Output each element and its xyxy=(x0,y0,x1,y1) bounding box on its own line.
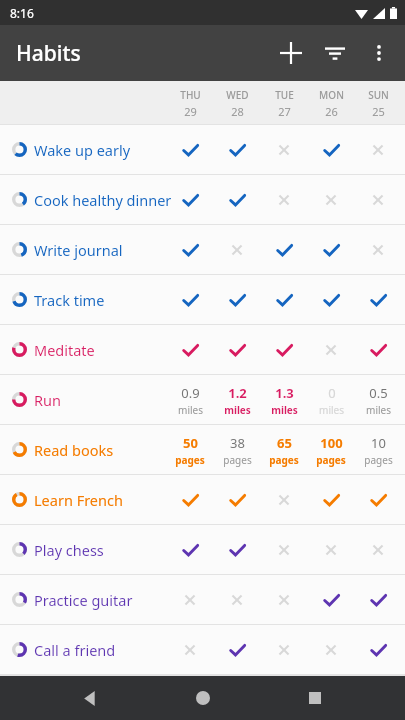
button[interactable]: Completed xyxy=(264,330,304,370)
button[interactable]: Completed xyxy=(170,480,210,520)
button[interactable]: Completed xyxy=(358,580,398,620)
button[interactable]: Completed xyxy=(311,580,351,620)
button[interactable]: Completed xyxy=(217,280,257,320)
staticText: miles xyxy=(319,403,344,417)
button[interactable]: Wake up early xyxy=(0,125,405,174)
button[interactable]: Not completed xyxy=(217,230,257,270)
button[interactable]: Completed xyxy=(358,480,398,520)
button[interactable]: Recent apps xyxy=(293,676,337,720)
staticText: Track time xyxy=(34,290,105,310)
staticText: 0.5 xyxy=(369,384,388,402)
button[interactable]: Completed xyxy=(170,280,210,320)
staticText: WED xyxy=(226,88,249,102)
button[interactable]: 0 xyxy=(309,378,353,422)
button[interactable]: Completed xyxy=(264,280,304,320)
button[interactable]: Completed xyxy=(311,280,351,320)
staticText: 50 xyxy=(183,434,198,452)
button[interactable]: Completed xyxy=(170,530,210,570)
button[interactable]: Not completed xyxy=(358,230,398,270)
staticText: 10 xyxy=(371,434,386,452)
staticText: pages xyxy=(175,453,205,467)
staticText: Read books xyxy=(34,440,114,460)
staticText: MON xyxy=(319,88,344,102)
button[interactable]: Completed xyxy=(358,280,398,320)
button[interactable]: Not completed xyxy=(264,630,304,670)
button[interactable]: Back xyxy=(68,676,112,720)
button[interactable]: 65 xyxy=(262,428,306,472)
staticText: Play chess xyxy=(34,540,104,560)
button[interactable]: Practice guitar xyxy=(0,575,405,624)
button[interactable]: 1.2 xyxy=(215,378,259,422)
staticText: miles xyxy=(178,403,203,417)
button[interactable]: Add habit xyxy=(269,31,313,75)
button[interactable]: 100 xyxy=(309,428,353,472)
button[interactable]: Completed xyxy=(217,480,257,520)
button[interactable]: Completed xyxy=(170,180,210,220)
staticText: TUE xyxy=(275,88,294,102)
button[interactable]: Write journal xyxy=(0,225,405,274)
button[interactable]: Run xyxy=(0,375,405,424)
button[interactable]: More options xyxy=(357,31,401,75)
button[interactable]: Completed xyxy=(311,130,351,170)
staticText: 8:16 xyxy=(10,5,34,21)
button[interactable]: Learn French xyxy=(0,475,405,524)
button[interactable]: Not completed xyxy=(264,130,304,170)
button[interactable]: Not completed xyxy=(264,580,304,620)
button[interactable]: Not completed xyxy=(311,330,351,370)
button[interactable]: Play chess xyxy=(0,525,405,574)
button[interactable]: Completed xyxy=(170,230,210,270)
button[interactable]: Not completed xyxy=(311,630,351,670)
button[interactable]: Track time xyxy=(0,275,405,324)
button[interactable]: Completed xyxy=(264,230,304,270)
button[interactable]: Not completed xyxy=(358,180,398,220)
staticText: Learn French xyxy=(34,490,123,510)
button[interactable]: Not completed xyxy=(217,580,257,620)
button[interactable]: 10 xyxy=(356,428,400,472)
button[interactable]: Cook healthy dinner xyxy=(0,175,405,224)
button[interactable]: 1.3 xyxy=(262,378,306,422)
staticText: miles xyxy=(366,403,391,417)
button[interactable]: Meditate xyxy=(0,325,405,374)
button[interactable]: Completed xyxy=(217,630,257,670)
button[interactable]: Call a friend xyxy=(0,625,405,674)
staticText: pages xyxy=(316,453,346,467)
button[interactable]: Filter xyxy=(313,31,357,75)
button[interactable]: Completed xyxy=(217,180,257,220)
button[interactable]: Not completed xyxy=(358,530,398,570)
button[interactable]: Not completed xyxy=(311,180,351,220)
staticText: pages xyxy=(364,453,393,467)
staticText: pages xyxy=(269,453,299,467)
staticText: SUN xyxy=(368,88,389,102)
staticText: Cook healthy dinner xyxy=(34,190,172,210)
button[interactable]: Not completed xyxy=(264,180,304,220)
button[interactable]: Completed xyxy=(217,130,257,170)
button[interactable]: Not completed xyxy=(264,480,304,520)
button[interactable]: Read books xyxy=(0,425,405,474)
button[interactable]: 50 xyxy=(168,428,212,472)
button[interactable]: Completed xyxy=(358,630,398,670)
button[interactable]: Completed xyxy=(170,130,210,170)
staticText: miles xyxy=(271,403,298,417)
staticText: Call a friend xyxy=(34,640,116,660)
button[interactable]: 0.9 xyxy=(168,378,212,422)
button[interactable]: Completed xyxy=(358,330,398,370)
button[interactable]: Completed xyxy=(311,480,351,520)
staticText: Meditate xyxy=(34,340,95,360)
staticText: Wake up early xyxy=(34,140,131,160)
button[interactable]: Not completed xyxy=(170,580,210,620)
staticText: 1.2 xyxy=(228,384,247,402)
button[interactable]: Completed xyxy=(170,330,210,370)
button[interactable]: Not completed xyxy=(311,530,351,570)
button[interactable]: Not completed xyxy=(170,630,210,670)
button[interactable]: Completed xyxy=(217,330,257,370)
button[interactable]: Home xyxy=(181,676,225,720)
button[interactable]: 38 xyxy=(215,428,259,472)
button[interactable]: Not completed xyxy=(264,530,304,570)
button[interactable]: Completed xyxy=(217,530,257,570)
button[interactable]: Completed xyxy=(311,230,351,270)
staticText: 38 xyxy=(230,434,245,452)
button[interactable]: Not completed xyxy=(358,130,398,170)
staticText: THU xyxy=(180,88,201,102)
staticText: 100 xyxy=(320,434,343,452)
button[interactable]: 0.5 xyxy=(356,378,400,422)
